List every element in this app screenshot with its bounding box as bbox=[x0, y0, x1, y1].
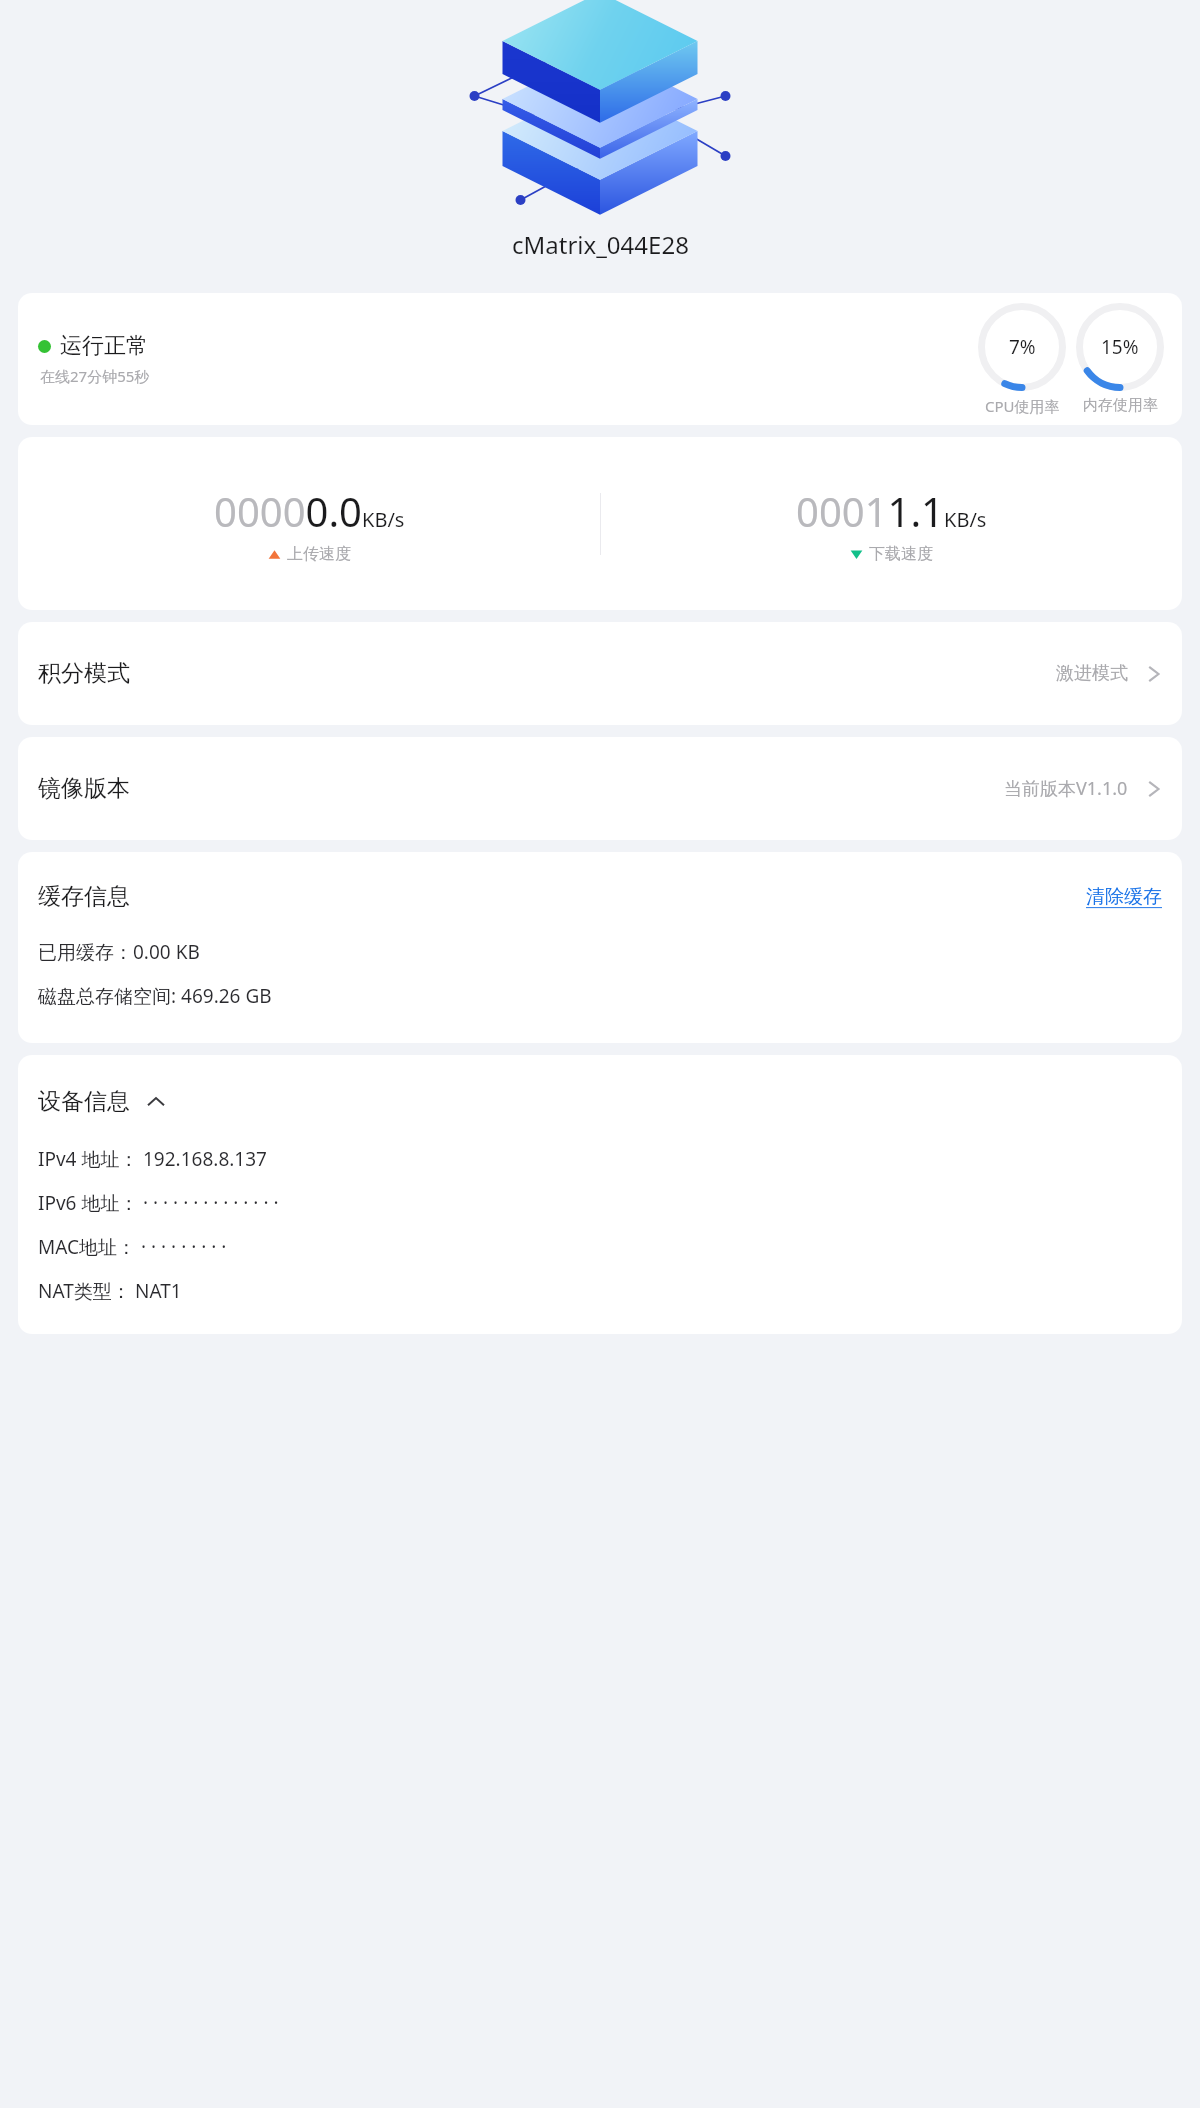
staticText: 15% bbox=[1101, 334, 1139, 360]
staticText: 积分模式 bbox=[38, 659, 130, 688]
staticText: IPv6 地址： bbox=[38, 1190, 139, 1216]
staticText: · · · · · · · · · · · · · · bbox=[143, 1190, 279, 1216]
button[interactable]: 清除缓存 bbox=[1086, 885, 1162, 909]
staticText: 激进模式 bbox=[1056, 662, 1128, 685]
button[interactable]: 积分模式 bbox=[18, 622, 1182, 725]
staticText: 清除缓存 bbox=[1086, 885, 1162, 909]
staticText: · · · · · · · · · bbox=[141, 1234, 227, 1260]
button[interactable]: 设备信息 bbox=[38, 1087, 166, 1116]
staticText: NAT1 bbox=[135, 1278, 182, 1304]
staticText: 7% bbox=[1009, 334, 1036, 360]
staticText: 下载速度 bbox=[869, 544, 933, 564]
button[interactable]: 镜像版本 bbox=[18, 737, 1182, 840]
staticText: CPU使用率 bbox=[985, 396, 1060, 416]
staticText: 运行正常 bbox=[60, 332, 148, 360]
staticText: NAT类型： bbox=[38, 1278, 131, 1304]
staticText: 镜像版本 bbox=[38, 774, 130, 803]
staticText: IPv4 地址： bbox=[38, 1146, 139, 1172]
staticText: MAC地址： bbox=[38, 1234, 137, 1260]
staticText: 已用缓存：0.00 KB bbox=[38, 939, 200, 965]
staticText: 在线27分钟55秒 bbox=[40, 366, 150, 386]
staticText: 内存使用率 bbox=[1083, 396, 1158, 415]
staticText: 当前版本V1.1.0 bbox=[1004, 776, 1128, 801]
staticText: 00000.0KB/s bbox=[214, 484, 405, 538]
staticText: 缓存信息 bbox=[38, 882, 130, 911]
staticText: 设备信息 bbox=[38, 1087, 130, 1116]
other: Collapse bbox=[146, 1092, 166, 1112]
staticText: 上传速度 bbox=[287, 544, 351, 564]
staticText: cMatrix_044E28 bbox=[512, 228, 689, 261]
staticText: 00011.1KB/s bbox=[796, 484, 987, 538]
staticText: 磁盘总存储空间: 469.26 GB bbox=[38, 983, 272, 1009]
staticText: 192.168.8.137 bbox=[143, 1146, 267, 1172]
